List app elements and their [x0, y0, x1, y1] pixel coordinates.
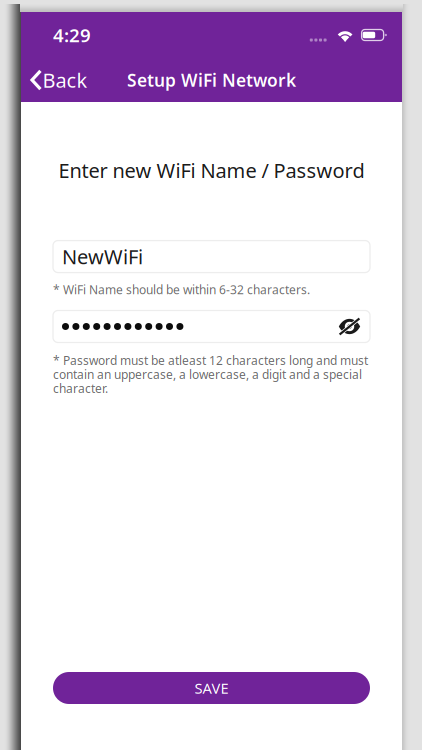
staticText: SAVE: [194, 678, 228, 698]
staticText: Setup WiFi Network: [127, 68, 296, 91]
staticText: Enter new WiFi Name / Password: [58, 157, 364, 184]
staticText: Back: [42, 67, 87, 93]
button[interactable]: SAVE: [53, 672, 370, 704]
staticText: 4:29: [53, 23, 91, 47]
staticText: * Password must be atleast 12 characters…: [53, 352, 368, 396]
staticText: NewWiFi: [62, 243, 143, 270]
staticText: * WiFi Name should be within 6-32 charac…: [53, 282, 310, 297]
button[interactable]: Show password: [338, 317, 361, 335]
button[interactable]: Back: [21, 57, 99, 103]
